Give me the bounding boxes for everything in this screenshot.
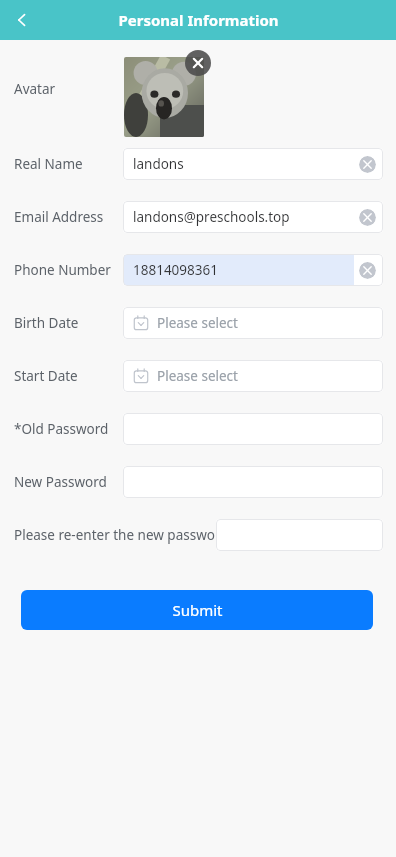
button[interactable]	[124, 57, 204, 137]
button[interactable]	[123, 466, 383, 498]
staticText: Avatar	[14, 80, 56, 98]
button[interactable]: Please select	[123, 360, 383, 392]
staticText: landons	[133, 155, 184, 173]
staticText: Real Name	[14, 155, 83, 173]
staticText: landons@preschools.top	[133, 208, 290, 226]
button[interactable]: Back	[0, 0, 44, 40]
staticText: Please select	[157, 314, 238, 332]
button[interactable]: Clear Phone Number	[359, 262, 376, 279]
button[interactable]: Clear Email Address	[359, 209, 376, 226]
staticText: *Old Password	[14, 420, 109, 438]
button[interactable]: landons	[123, 148, 383, 180]
staticText: Email Address	[14, 208, 104, 226]
staticText: 18814098361	[133, 261, 218, 279]
staticText: Please select	[157, 367, 238, 385]
staticText: Birth Date	[14, 314, 79, 332]
staticText: New Password	[14, 473, 107, 491]
button[interactable]	[216, 519, 383, 551]
button[interactable]: landons@preschools.top	[123, 201, 383, 233]
staticText: Submit	[172, 600, 223, 620]
button[interactable]: Clear Real Name	[359, 156, 376, 173]
staticText: Please re-enter the new password	[14, 526, 229, 544]
button[interactable]: Remove avatar	[185, 50, 211, 76]
button[interactable]: Submit	[21, 590, 373, 630]
staticText: Start Date	[14, 367, 78, 385]
button[interactable]	[123, 413, 383, 445]
button[interactable]: 18814098361	[123, 254, 383, 286]
button[interactable]: Please select	[123, 307, 383, 339]
staticText: Phone Number	[14, 261, 111, 279]
staticText: Personal Information	[118, 10, 279, 30]
